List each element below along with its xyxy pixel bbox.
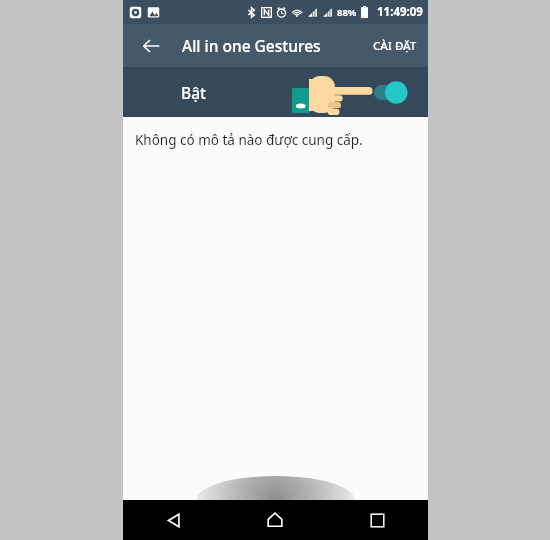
staticText: CÀI ĐẶT [373, 38, 417, 54]
staticText: 88% [337, 6, 357, 19]
button[interactable]: Home [224, 500, 326, 540]
button[interactable]: Bật [123, 67, 428, 117]
button[interactable]: Back [123, 500, 224, 540]
staticText: Không có mô tả nào được cung cấp. [135, 131, 363, 149]
button[interactable]: Back [133, 28, 169, 64]
staticText: All in one Gestures [182, 35, 321, 56]
staticText: 11:49:09 [377, 4, 423, 20]
staticText: Bật [181, 82, 206, 103]
button[interactable]: CÀI ĐẶT [362, 24, 428, 67]
button[interactable]: Recent apps [326, 500, 428, 540]
